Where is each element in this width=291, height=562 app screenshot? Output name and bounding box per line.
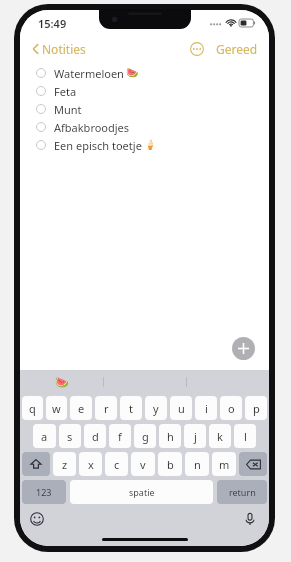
staticText: v — [140, 457, 146, 472]
button[interactable]: Watermeloen — [20, 64, 269, 82]
button[interactable]: Munt — [20, 100, 269, 118]
button[interactable]: p — [245, 396, 267, 420]
button[interactable]: Notities — [28, 39, 90, 59]
button[interactable]: Dictation — [243, 512, 257, 526]
button[interactable]: i — [195, 396, 217, 420]
staticText: q — [29, 401, 36, 416]
staticText: b — [167, 457, 174, 472]
staticText: n — [194, 457, 201, 472]
staticText: h — [167, 429, 174, 444]
button[interactable]: u — [170, 396, 192, 420]
staticText: Feta — [54, 84, 77, 99]
button[interactable]: y — [145, 396, 167, 420]
button[interactable]: w — [46, 396, 67, 420]
staticText: w — [52, 401, 61, 416]
button[interactable]: 🍉 — [20, 370, 103, 394]
button[interactable]: return — [217, 480, 267, 504]
staticText: u — [178, 401, 185, 416]
button[interactable]: spatie — [70, 480, 213, 504]
staticText: f — [118, 429, 122, 444]
staticText: o — [228, 401, 235, 416]
button[interactable]: Add item — [232, 337, 255, 360]
button[interactable]: Emoji keyboard — [30, 512, 44, 526]
staticText: l — [244, 429, 247, 444]
staticText: t — [129, 401, 133, 416]
button[interactable]: e — [70, 396, 92, 420]
button[interactable]: g — [134, 424, 156, 448]
staticText: c — [114, 457, 120, 472]
button[interactable]: v — [131, 452, 155, 476]
staticText: x — [88, 457, 94, 472]
button[interactable]: t — [120, 396, 142, 420]
button[interactable]: More options — [190, 42, 204, 56]
staticText: p — [253, 401, 260, 416]
staticText: Afbakbroodjes — [54, 120, 130, 135]
button[interactable]: m — [212, 452, 236, 476]
staticText: m — [219, 457, 230, 472]
button[interactable]: s — [59, 424, 81, 448]
button[interactable]: h — [159, 424, 181, 448]
staticText: 🍦 — [144, 139, 157, 151]
button[interactable]: q — [22, 396, 43, 420]
button[interactable]: j — [184, 424, 206, 448]
button[interactable]: d — [84, 424, 106, 448]
staticText: return — [229, 486, 256, 498]
staticText: 15:49 — [38, 16, 67, 31]
staticText: 🍉 — [126, 67, 139, 79]
button[interactable]: c — [105, 452, 128, 476]
button[interactable]: n — [185, 452, 209, 476]
button[interactable]: Shift — [22, 452, 50, 476]
staticText: 123 — [36, 486, 52, 498]
staticText: r — [104, 401, 109, 416]
staticText: a — [41, 429, 48, 444]
staticText: Watermeloen — [54, 66, 124, 81]
staticText: i — [205, 401, 208, 416]
staticText: k — [217, 429, 223, 444]
staticText: j — [194, 429, 197, 444]
button[interactable]: a — [33, 424, 56, 448]
staticText: Notities — [42, 41, 86, 57]
staticText: g — [142, 429, 149, 444]
staticText: Munt — [54, 102, 82, 117]
button[interactable]: f — [109, 424, 131, 448]
button[interactable]: x — [79, 452, 102, 476]
staticText: d — [92, 429, 99, 444]
staticText: spatie — [129, 486, 155, 498]
button[interactable]: Feta — [20, 82, 269, 100]
button[interactable]: Afbakbroodjes — [20, 118, 269, 136]
button[interactable]: Een episch toetje — [20, 136, 269, 154]
staticText: y — [153, 401, 159, 416]
button[interactable]: o — [220, 396, 242, 420]
staticText: z — [62, 457, 68, 472]
staticText: Gereed — [216, 41, 258, 57]
staticText: s — [67, 429, 73, 444]
button[interactable]: 123 — [22, 480, 66, 504]
button[interactable]: k — [209, 424, 231, 448]
button[interactable]: l — [234, 424, 256, 448]
button[interactable]: z — [53, 452, 76, 476]
staticText: Een episch toetje — [54, 138, 142, 153]
staticText: e — [78, 401, 85, 416]
button[interactable]: b — [158, 452, 182, 476]
button[interactable]: Backspace — [239, 452, 267, 476]
button[interactable]: Gereed — [213, 39, 261, 59]
button[interactable]: r — [95, 396, 117, 420]
staticText: 🍉 — [55, 376, 69, 389]
